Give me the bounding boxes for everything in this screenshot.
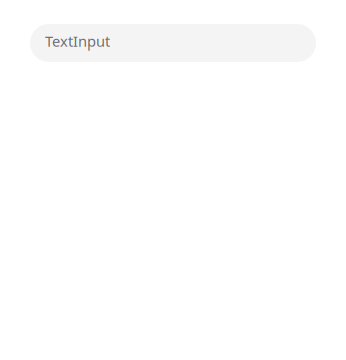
button[interactable]: TextInput: [30, 24, 316, 62]
staticText: TextInput: [45, 31, 110, 51]
